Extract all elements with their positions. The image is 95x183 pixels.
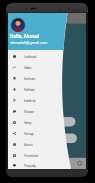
staticText: Privacy policy	[24, 164, 36, 168]
button[interactable]: Bookmarks	[8, 73, 56, 84]
button[interactable]: Share app	[8, 128, 56, 139]
button[interactable]: Privacy policy	[8, 161, 56, 170]
staticText: Bookmarks	[24, 77, 36, 81]
button[interactable]: Motivation	[8, 106, 56, 117]
staticText: Statistics	[24, 66, 32, 70]
button[interactable]: Leaderboard	[8, 51, 56, 62]
button[interactable]: Invite friends	[8, 95, 56, 106]
staticText: Invite friends	[24, 99, 36, 103]
button[interactable]: Settings	[8, 117, 56, 128]
staticText: Terms of service	[24, 154, 39, 158]
staticText: Motivation	[24, 110, 34, 114]
staticText: Share app	[24, 132, 34, 136]
staticText: About us	[24, 143, 33, 147]
staticText: Hello, Ahmad	[10, 33, 40, 39]
staticText: Leaderboard	[24, 55, 37, 59]
staticText: Notification	[24, 88, 35, 92]
button[interactable]: Notification	[8, 84, 56, 95]
button[interactable]: Terms of service	[8, 150, 56, 161]
button[interactable]: Statistics	[8, 62, 56, 73]
button[interactable]: About us	[8, 139, 56, 150]
staticText: Settings	[24, 121, 32, 125]
staticText: ahmadali@gmail.com	[10, 40, 48, 45]
